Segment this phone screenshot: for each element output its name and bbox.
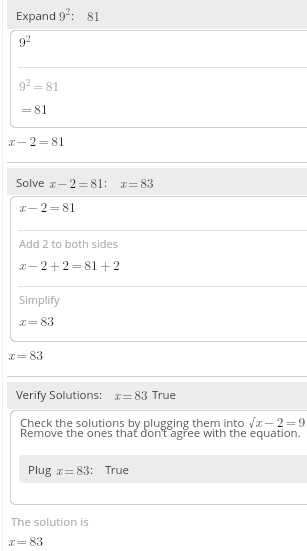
staticText: √x − 2 = 9 — [249, 412, 306, 431]
staticText: Plug — [28, 462, 52, 478]
staticText: x − 2 = 81 — [49, 173, 104, 191]
staticText: 92 — [59, 5, 71, 24]
staticText: x = 83 — [19, 311, 55, 330]
staticText: x = 83 — [56, 460, 90, 478]
staticText: x = 83 — [114, 385, 148, 403]
staticText: : — [71, 8, 75, 24]
staticText: Check the solutions by plugging them int… — [20, 415, 245, 431]
staticText: : — [90, 462, 94, 478]
staticText: Remove the ones that don’t agree with th… — [20, 425, 301, 441]
staticText: The solution is — [11, 514, 89, 530]
staticText: x = 83 — [8, 345, 44, 364]
staticText: True — [152, 387, 176, 403]
staticText: 81 — [87, 6, 100, 24]
button[interactable]: Plug — [19, 455, 307, 483]
button[interactable]: Verify Solutions: — [7, 382, 307, 409]
staticText: 92 = 81 — [19, 75, 60, 95]
staticText: Simplify — [19, 292, 60, 307]
button[interactable]: Solve — [7, 168, 307, 195]
staticText: 92 — [19, 31, 31, 51]
staticText: Solve — [16, 175, 45, 191]
staticText: True — [105, 462, 129, 478]
staticText: = 81 — [19, 99, 48, 118]
staticText: x − 2 + 2 = 81 + 2 — [19, 255, 120, 274]
staticText: x = 83 — [8, 531, 44, 550]
staticText: x − 2 = 81 — [8, 131, 65, 150]
staticText: : — [104, 175, 108, 191]
staticText: Expand — [16, 8, 56, 24]
staticText: x = 83 — [120, 173, 154, 191]
staticText: x − 2 = 81 — [19, 197, 76, 216]
staticText: Verify Solutions: — [16, 387, 103, 403]
staticText: Add 2 to both sides — [19, 236, 118, 251]
button[interactable]: Expand — [7, 0, 307, 29]
